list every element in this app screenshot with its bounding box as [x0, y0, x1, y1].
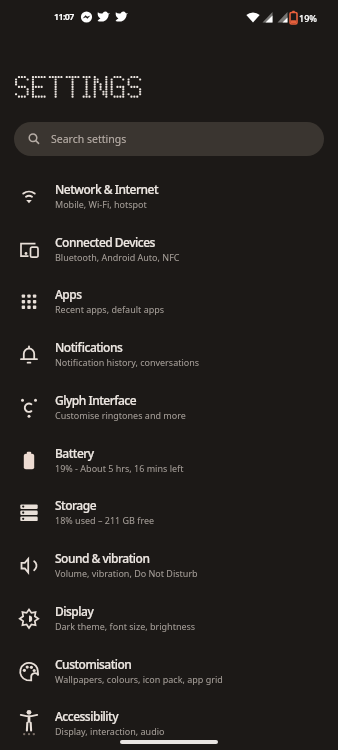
staticText: Notifications [55, 339, 123, 355]
button[interactable]: Apps [0, 276, 338, 329]
button[interactable]: Customisation [0, 646, 338, 699]
staticText: 11:07 [54, 11, 74, 23]
button[interactable]: Storage [0, 487, 338, 540]
staticText: Storage [55, 497, 97, 513]
staticText: Volume, vibration, Do Not Disturb [55, 567, 198, 579]
button[interactable]: Notifications [0, 329, 338, 382]
staticText: Battery [55, 445, 94, 461]
staticText: Display, interaction, audio [55, 725, 165, 737]
button[interactable]: Search settings [14, 122, 324, 156]
button[interactable]: Battery [0, 435, 338, 488]
button[interactable]: Sound & vibration [0, 540, 338, 593]
staticText: Recent apps, default apps [55, 303, 165, 315]
staticText: Connected Devices [55, 234, 155, 250]
staticText: 18% used – 211 GB free [55, 514, 155, 526]
staticText: Glyph Interface [55, 392, 137, 408]
staticText: Bluetooth, Android Auto, NFC [55, 251, 180, 263]
staticText: Apps [55, 286, 82, 302]
button[interactable]: Connected Devices [0, 224, 338, 277]
button[interactable]: Glyph Interface [0, 382, 338, 435]
staticText: Network & Internet [55, 181, 159, 197]
staticText: Sound & vibration [55, 550, 150, 566]
staticText: Mobile, Wi-Fi, hotspot [55, 198, 147, 210]
staticText: 19% [299, 12, 317, 24]
staticText: Accessibility [55, 708, 119, 724]
staticText: Customisation [55, 656, 132, 672]
button[interactable]: Network & Internet [0, 171, 338, 224]
staticText: Search settings [51, 132, 127, 146]
staticText: Wallpapers, colours, icon pack, app grid [55, 673, 223, 685]
staticText: 19% - About 5 hrs, 16 mins left [55, 462, 184, 474]
button[interactable]: Accessibility [0, 698, 338, 750]
button[interactable]: Display [0, 593, 338, 646]
staticText: Customise ringtones and more [55, 409, 186, 421]
staticText: Notification history, conversations [55, 356, 200, 368]
staticText: Display [55, 603, 94, 619]
staticText: Dark theme, font size, brightness [55, 620, 196, 632]
